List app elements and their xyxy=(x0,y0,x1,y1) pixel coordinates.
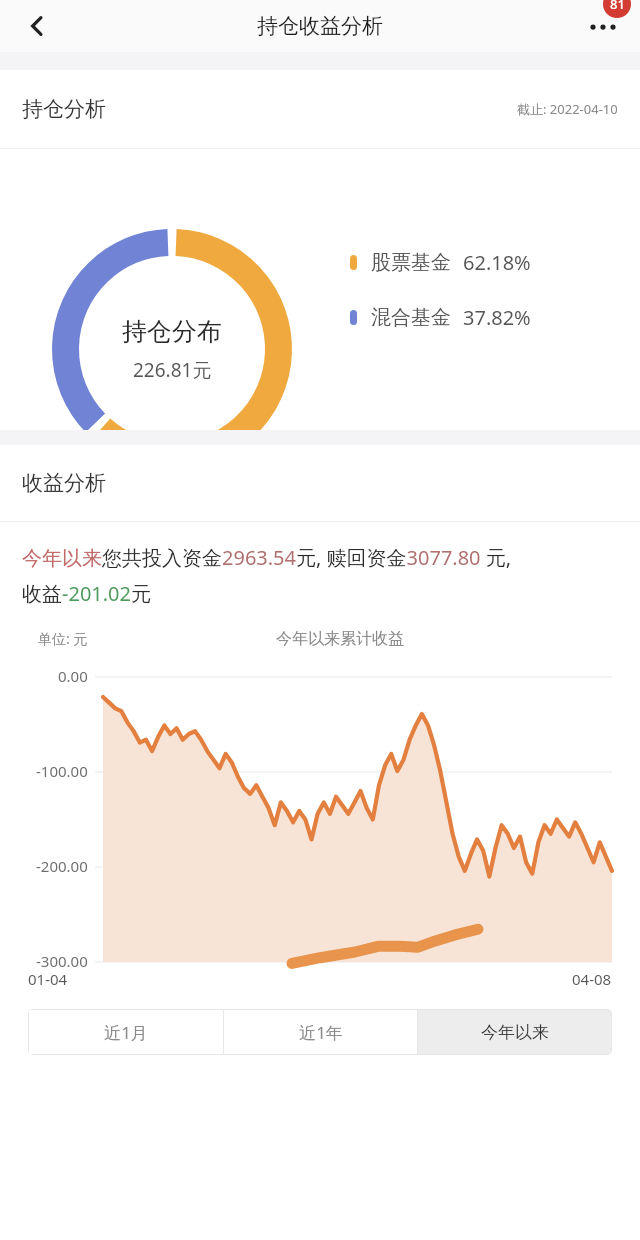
staticText: 持仓分布 xyxy=(122,316,222,347)
button[interactable]: 近1年 xyxy=(224,1010,417,1054)
staticText: 单位: 元 xyxy=(38,629,88,648)
staticText: -300.00 xyxy=(36,951,88,971)
button[interactable]: 今年以来 xyxy=(418,1010,611,1054)
staticText: 0.00 xyxy=(58,666,88,686)
staticText: 近1月 xyxy=(104,1021,148,1044)
staticText: 04-08 xyxy=(572,969,612,989)
staticText: 今年以来您共投入资金2963.54元, 赎回资金3077.80 元, 收益-20… xyxy=(22,544,512,607)
staticText: 近1年 xyxy=(299,1021,343,1044)
staticText: 37.82% xyxy=(463,304,531,331)
button[interactable]: More options xyxy=(576,0,630,52)
button[interactable]: 近1月 xyxy=(29,1010,223,1054)
staticText: 持仓收益分析 xyxy=(257,13,383,39)
staticText: 62.18% xyxy=(463,249,531,276)
staticText: 81 xyxy=(610,0,625,13)
staticText: 股票基金 xyxy=(371,250,451,275)
staticText: 混合基金 xyxy=(371,305,451,330)
staticText: 收益分析 xyxy=(22,470,106,496)
staticText: 持仓分析 xyxy=(22,96,106,122)
button[interactable]: Back xyxy=(14,3,60,49)
staticText: -100.00 xyxy=(36,761,88,781)
staticText: 今年以来 xyxy=(481,1022,549,1043)
staticText: -200.00 xyxy=(36,856,88,876)
staticText: 226.81元 xyxy=(133,357,212,383)
staticText: 01-04 xyxy=(28,969,68,989)
staticText: 今年以来累计收益 xyxy=(276,629,404,649)
staticText: 截止: 2022-04-10 xyxy=(517,100,618,118)
